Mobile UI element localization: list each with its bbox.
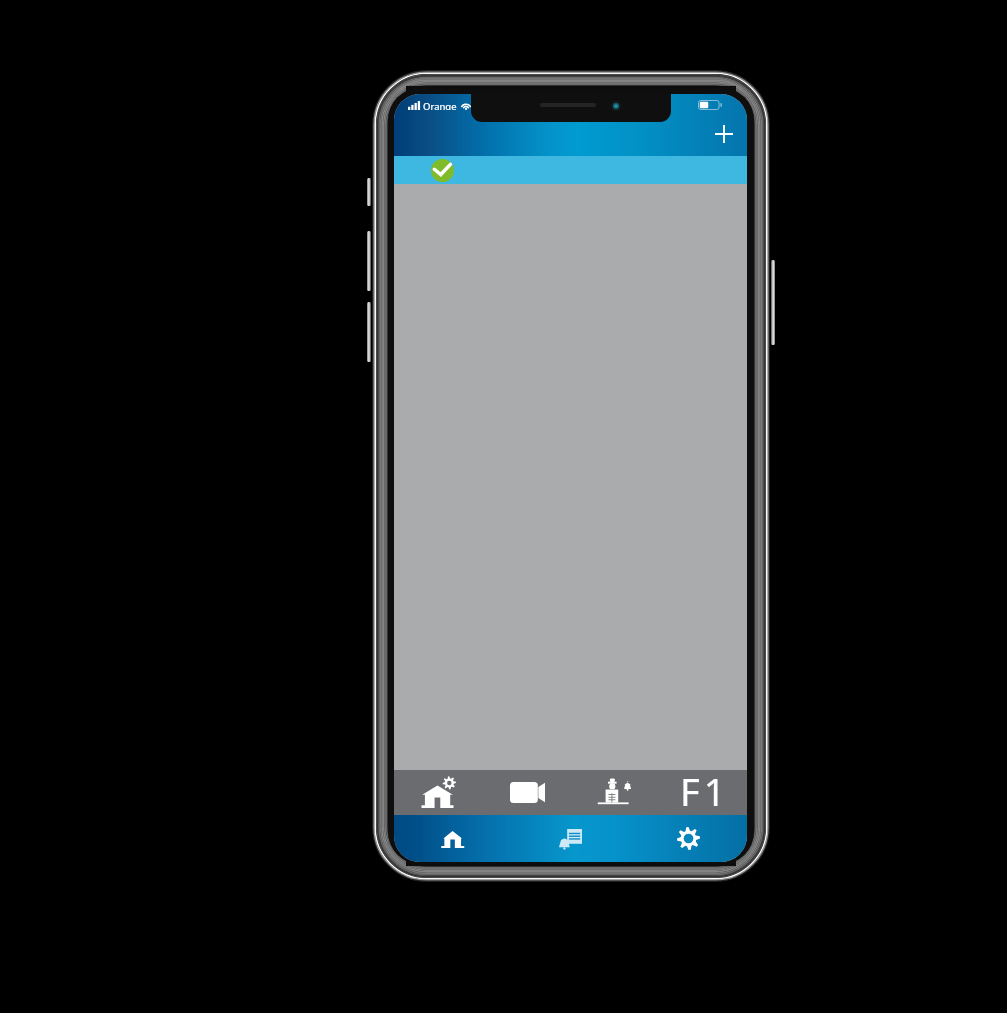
- button[interactable]: Home settings: [394, 770, 483, 815]
- button[interactable]: Settings: [629, 815, 747, 862]
- button[interactable]: Cameras: [483, 770, 571, 815]
- staticText: F1: [680, 765, 730, 810]
- button[interactable]: F1: [659, 770, 747, 815]
- button[interactable]: Door station: [571, 770, 659, 815]
- button[interactable]: Events: [511, 815, 629, 862]
- staticText: Orange: [423, 100, 457, 110]
- button[interactable]: Connected: [431, 159, 454, 182]
- button[interactable]: Add: [702, 112, 746, 156]
- button[interactable]: Home: [394, 815, 511, 862]
